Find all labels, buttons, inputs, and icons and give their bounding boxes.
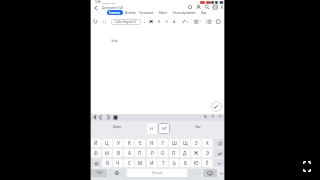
button[interactable]: Рисование [138,10,155,15]
staticText: А [128,150,131,156]
button[interactable] [302,160,312,172]
button[interactable]: Н [147,139,157,147]
button[interactable]: Русский [127,169,187,177]
button[interactable]: К [156,18,163,25]
staticText: Ж [194,150,199,156]
staticText: + [144,20,146,24]
button[interactable] [203,169,217,177]
staticText: Щ [183,140,188,146]
button[interactable]: И [147,159,157,167]
button[interactable]: Главная [107,10,123,15]
staticText: A [173,19,176,24]
button[interactable]: С [124,159,134,167]
button[interactable]: Э [202,149,212,157]
button[interactable]: Дзен [105,122,130,130]
staticText: И [150,160,154,166]
staticText: Р [151,150,154,156]
staticText: Т [162,160,165,166]
button[interactable]: Ж [148,18,155,25]
button[interactable]: Ю [191,159,201,167]
staticText: Ю [194,160,199,166]
button[interactable] [218,169,225,177]
staticText: Г [162,140,165,146]
button[interactable] [214,149,224,157]
button[interactable]: Ф [91,149,101,157]
staticText: Ь [173,160,176,166]
staticText: 9:46 [95,0,101,4]
button[interactable] [214,139,224,147]
button[interactable]: Ч [113,159,123,167]
button[interactable]: Е [135,139,145,147]
staticText: З [195,140,198,146]
staticText: . [194,170,196,176]
button[interactable]: Я [102,159,112,167]
button[interactable]: Макет [157,10,169,15]
button[interactable]: Тыс [188,122,208,130]
button[interactable]: К [124,139,134,147]
button[interactable]: Д [180,149,190,157]
button[interactable]: Вставка [124,10,136,15]
button[interactable]: О [158,149,168,157]
staticText: Х [206,140,209,146]
staticText: НГ [162,126,167,131]
button[interactable]: Ж [202,114,209,120]
button[interactable] [214,159,224,167]
button[interactable] [211,101,222,112]
button[interactable]: Ж [191,149,201,157]
button[interactable]: A [170,18,178,25]
button[interactable]: Т [158,159,168,167]
button[interactable]: Л [169,149,179,157]
staticText: Ч [165,19,168,24]
button[interactable] [91,159,101,167]
button[interactable]: Щ [180,139,190,147]
staticText: Ц [105,140,109,146]
button[interactable] [93,5,99,11]
button[interactable]: Н [147,123,157,134]
staticText: В [117,150,120,156]
staticText: К [212,115,214,119]
staticText: Б [184,160,187,166]
button[interactable]: Рецензирование [171,10,197,15]
button[interactable] [108,169,126,177]
staticText: Вид [201,11,207,15]
button[interactable]: Ь [169,159,179,167]
button[interactable]: Х [202,139,212,147]
staticText: Вставка [125,11,136,15]
button[interactable]: Ш [169,139,179,147]
button[interactable]: П [135,149,145,157]
staticText: Макет [159,11,168,15]
staticText: П [138,150,142,156]
staticText: Я [106,160,109,166]
staticText: Главная [109,11,121,15]
button[interactable]: А [124,149,134,157]
button[interactable]: Calibri Regular (О [111,19,141,25]
button[interactable]: Вид [199,10,208,15]
button[interactable]: Г [158,139,168,147]
staticText: Ё [206,160,209,166]
button[interactable]: ?123 [91,169,107,177]
staticText: К [128,140,131,146]
button[interactable]: Ё [202,159,212,167]
button[interactable]: Ч [217,114,224,120]
button[interactable]: В [113,149,123,157]
button[interactable]: З [191,139,201,147]
button[interactable]: Ц [102,139,112,147]
staticText: Э [206,150,209,156]
staticText: Л [172,150,176,156]
button[interactable]: М [135,159,145,167]
button[interactable]: Ы [102,149,112,157]
button[interactable]: Б [180,159,190,167]
button[interactable]: Р [147,149,157,157]
button[interactable]: НГ [158,123,170,134]
button[interactable]: Ч [163,18,170,25]
staticText: ?123 [96,171,103,175]
button[interactable]: + [142,19,147,25]
staticText: Ш [172,140,177,146]
button[interactable]: К [209,114,216,120]
button[interactable]: У [113,139,123,147]
staticText: Запись экр. [102,1,116,4]
button[interactable]: Й [91,139,101,147]
staticText: Ф [94,150,98,156]
staticText: Ы [105,150,109,156]
